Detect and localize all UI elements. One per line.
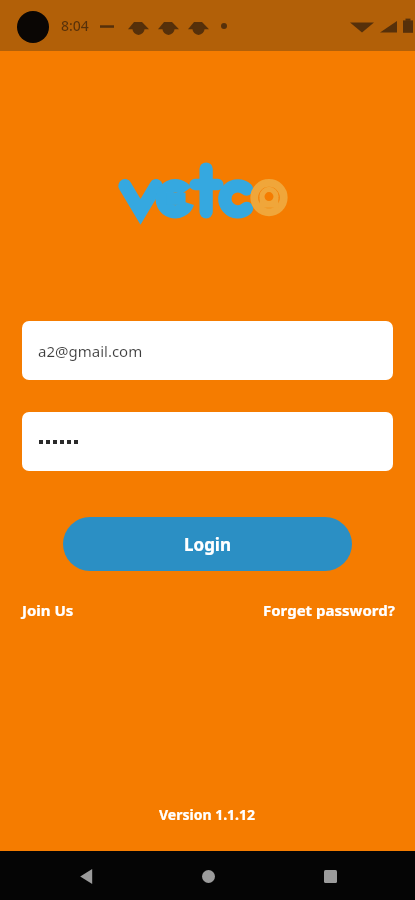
button[interactable]: a2@gmail.com bbox=[22, 321, 393, 380]
button[interactable]: Home bbox=[186, 854, 230, 898]
button[interactable] bbox=[22, 412, 393, 471]
staticText: Join Us bbox=[22, 600, 74, 620]
button[interactable]: Back bbox=[64, 854, 108, 898]
staticText: Version 1.1.12 bbox=[159, 805, 256, 824]
staticText: Forget password? bbox=[263, 600, 395, 620]
button[interactable]: Join Us bbox=[0, 594, 84, 626]
button[interactable]: Recents bbox=[308, 854, 352, 898]
staticText: 8:04 bbox=[61, 16, 89, 35]
button[interactable]: Login bbox=[63, 517, 352, 571]
staticText: Login bbox=[184, 533, 232, 556]
staticText: a2@gmail.com bbox=[38, 341, 143, 361]
button[interactable]: Forget password? bbox=[253, 594, 415, 626]
